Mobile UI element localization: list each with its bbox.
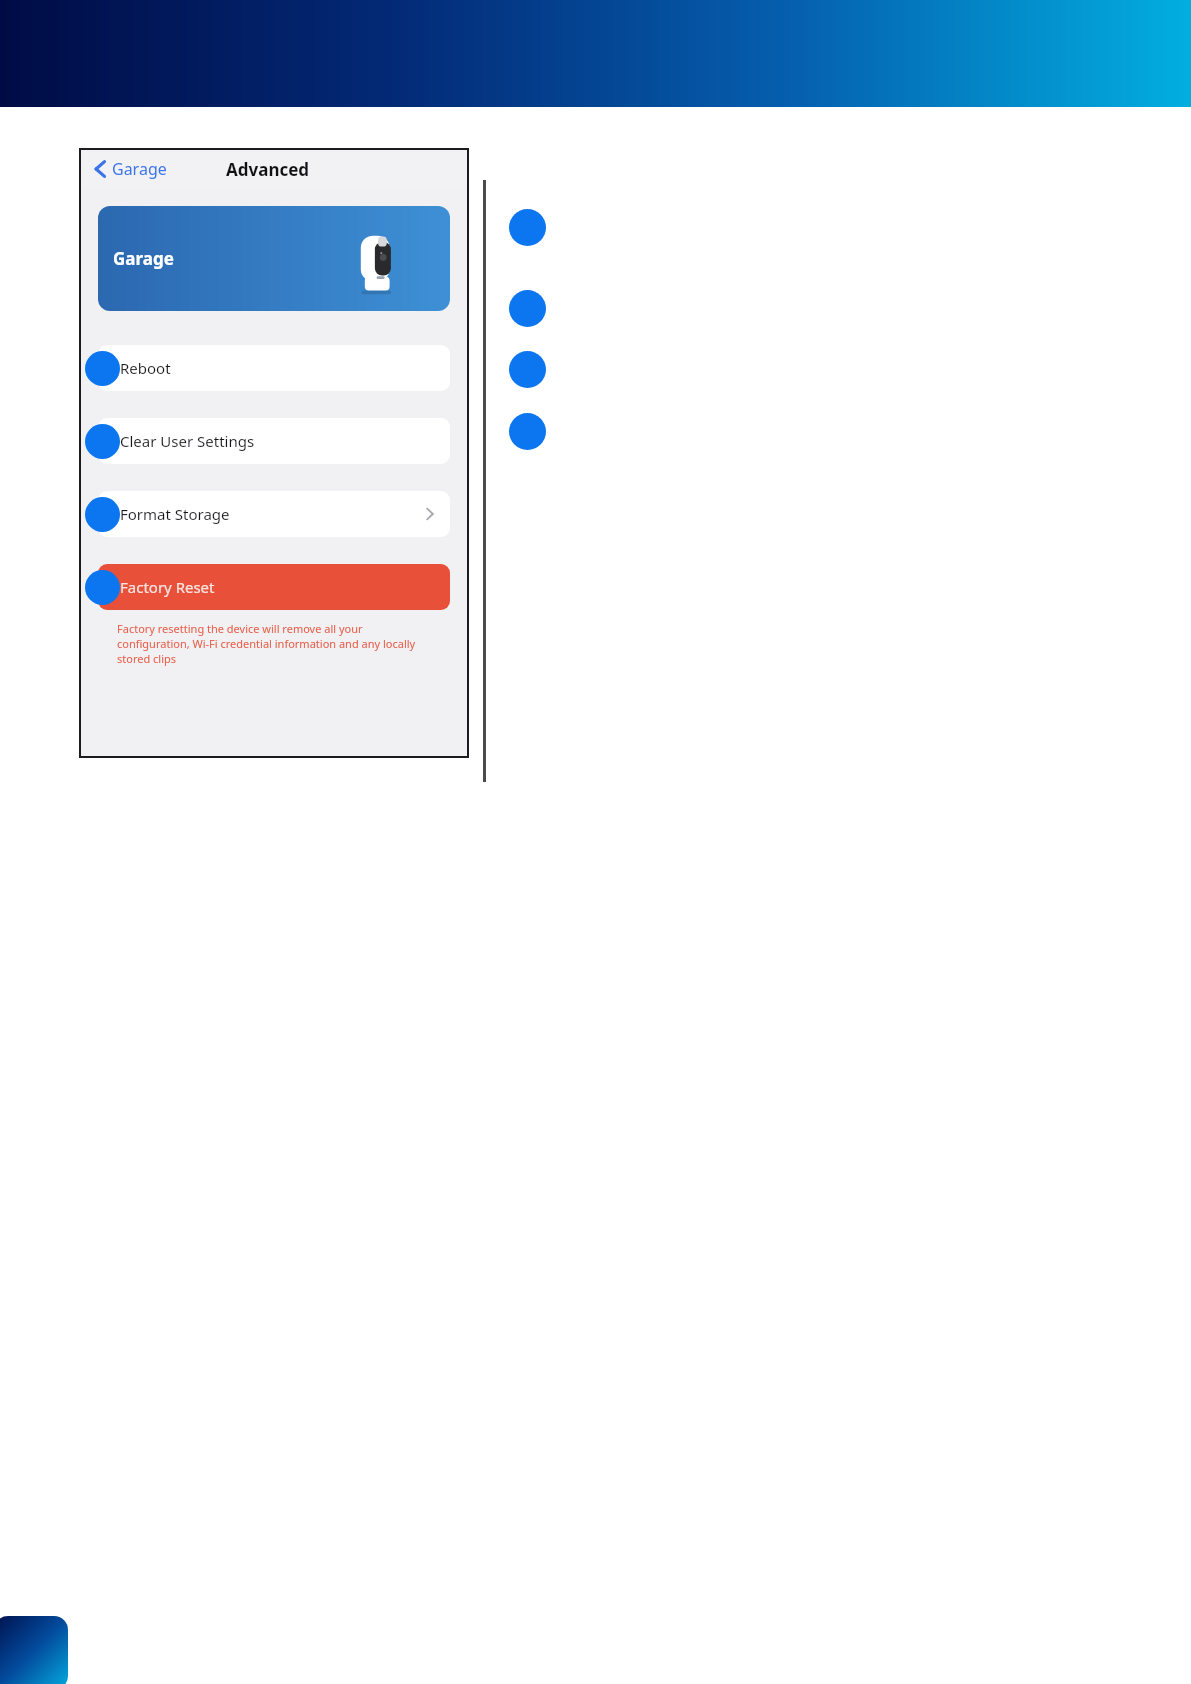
button[interactable]: Annotation marker <box>85 424 120 459</box>
button[interactable] <box>509 413 546 450</box>
staticText: Factory Reset <box>120 577 215 597</box>
button[interactable]: Annotation marker <box>85 570 120 605</box>
staticText: Garage <box>113 247 174 270</box>
button[interactable]: Garage <box>89 154 171 184</box>
button[interactable] <box>0 1616 68 1684</box>
button[interactable] <box>509 351 546 388</box>
button[interactable]: Garage <box>98 206 450 311</box>
button[interactable]: Annotation marker <box>85 351 120 386</box>
button[interactable]: Factory Reset <box>98 564 450 610</box>
button[interactable]: Reboot <box>98 345 450 391</box>
button[interactable] <box>509 290 546 327</box>
staticText: Garage <box>112 158 167 180</box>
staticText: Factory resetting the device will remove… <box>117 621 429 666</box>
button[interactable]: Clear User Settings <box>98 418 450 464</box>
staticText: Format Storage <box>120 504 230 524</box>
staticText: Clear User Settings <box>120 431 255 451</box>
button[interactable]: Annotation marker <box>85 497 120 532</box>
staticText: Advanced <box>226 158 310 181</box>
staticText: Reboot <box>120 358 171 378</box>
button[interactable] <box>509 209 546 246</box>
button[interactable]: Format Storage <box>98 491 450 537</box>
